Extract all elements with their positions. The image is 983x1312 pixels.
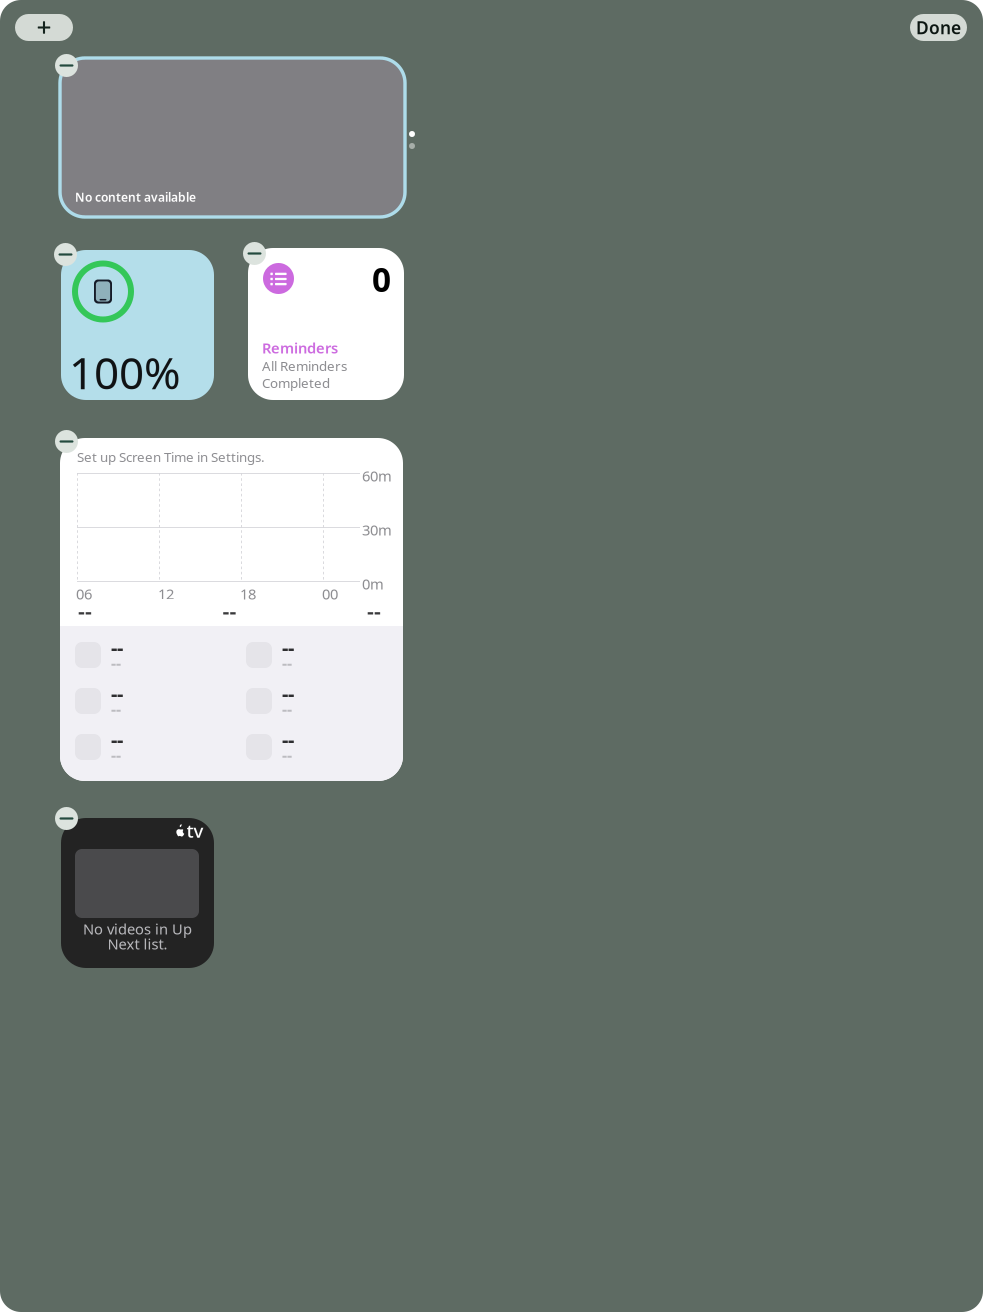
button[interactable]: Done: [910, 14, 967, 41]
button[interactable]: tv: [61, 818, 214, 968]
button[interactable]: Remove widget: [55, 807, 78, 830]
staticText: No videos in Up: [83, 919, 192, 938]
button[interactable]: Remove widget: [55, 54, 78, 77]
button[interactable]: Remove widget: [243, 242, 266, 265]
staticText: 0: [372, 257, 391, 301]
button[interactable]: No content available: [60, 58, 405, 217]
button[interactable]: Set up Screen Time in Settings.: [60, 438, 403, 781]
staticText: --: [111, 726, 123, 753]
staticText: --: [78, 597, 92, 625]
button[interactable]: 0: [248, 248, 404, 400]
staticText: 100%: [69, 343, 181, 401]
staticText: --: [111, 744, 121, 765]
button[interactable]: Remove widget: [55, 430, 78, 453]
staticText: Set up Screen Time in Settings.: [77, 448, 265, 466]
staticText: --: [282, 744, 292, 765]
staticText: --: [282, 652, 292, 673]
staticText: No content available: [75, 189, 196, 205]
staticText: --: [111, 698, 121, 719]
staticText: tv: [186, 818, 203, 843]
staticText: Done: [916, 16, 961, 39]
staticText: --: [282, 698, 292, 719]
staticText: --: [282, 680, 294, 707]
staticText: 0m: [362, 574, 384, 593]
staticText: Completed: [262, 374, 330, 392]
staticText: 00: [322, 584, 338, 603]
staticText: --: [282, 634, 294, 661]
staticText: --: [222, 597, 236, 625]
staticText: 30m: [362, 520, 392, 539]
staticText: --: [111, 634, 123, 661]
button[interactable]: 100%: [61, 250, 214, 400]
staticText: 12: [158, 584, 174, 603]
staticText: Next list.: [107, 934, 167, 953]
staticText: 06: [76, 584, 92, 603]
button[interactable]: Remove widget: [54, 243, 77, 266]
button[interactable]: Add widget: [15, 14, 73, 41]
staticText: 60m: [362, 466, 392, 485]
staticText: --: [111, 652, 121, 673]
staticText: --: [367, 597, 381, 625]
staticText: All Reminders: [262, 357, 347, 375]
staticText: 18: [240, 584, 256, 603]
staticText: --: [111, 680, 123, 707]
staticText: --: [282, 726, 294, 753]
staticText: Reminders: [262, 338, 338, 357]
